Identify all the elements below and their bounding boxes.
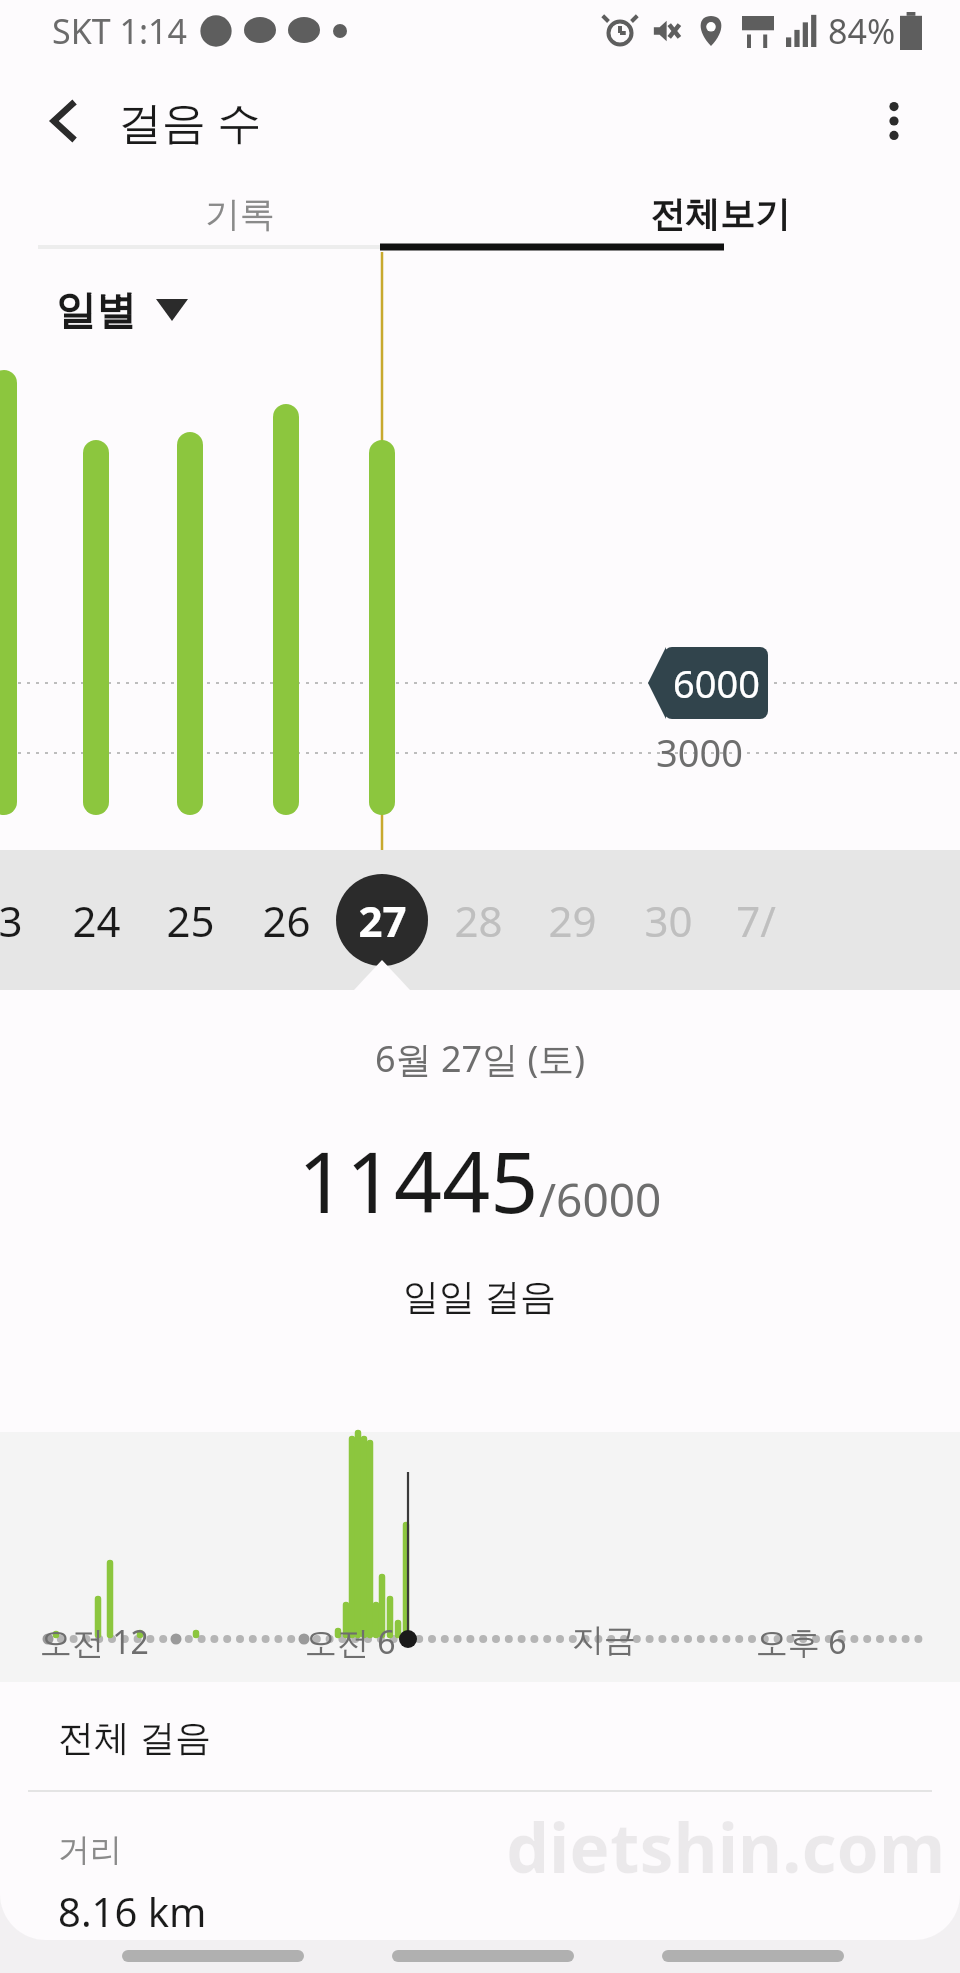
staticText: 6000 — [673, 657, 760, 709]
staticText: 8.16 km — [58, 1884, 207, 1938]
staticText: 27 — [358, 892, 407, 949]
button[interactable]: More options — [856, 83, 932, 159]
staticText: 기록 — [205, 192, 275, 236]
staticText: 오전 6 — [305, 1620, 396, 1664]
button[interactable]: 3 — [0, 874, 56, 966]
staticText: 7/ — [736, 892, 776, 949]
staticText: 11445 — [298, 1123, 539, 1237]
staticText: 29 — [548, 892, 597, 949]
button[interactable]: 29 — [526, 874, 618, 966]
button[interactable]: 전체 걸음 — [0, 1682, 960, 1790]
staticText: /6000 — [539, 1168, 662, 1231]
staticText: 24 — [72, 892, 121, 949]
staticText: 걸음 수 — [118, 91, 262, 151]
button[interactable]: 27 — [336, 874, 428, 966]
staticText: 28 — [454, 892, 503, 949]
staticText: 일별 — [56, 285, 136, 335]
staticText: 84% — [828, 8, 896, 54]
staticText: 일일 걸음 — [403, 1271, 557, 1320]
staticText: 오후 6 — [756, 1620, 847, 1664]
staticText: 3000 — [656, 726, 743, 778]
staticText: 30 — [644, 892, 693, 949]
staticText: 6월 27일 (토) — [375, 1034, 586, 1083]
button[interactable]: 일별 — [56, 282, 188, 338]
button[interactable]: 26 — [240, 874, 332, 966]
button[interactable]: 28 — [432, 874, 524, 966]
staticText: 25 — [166, 892, 215, 949]
button[interactable]: 25 — [144, 874, 236, 966]
staticText: 오전 12 — [40, 1620, 149, 1664]
button[interactable]: 거리 — [0, 1792, 960, 1940]
staticText: 거리 — [58, 1830, 122, 1870]
button[interactable]: 30 — [622, 874, 714, 966]
staticText: 지금 — [572, 1620, 636, 1660]
staticText: 3 — [0, 892, 23, 949]
staticText: SKT 1:14 — [52, 8, 187, 54]
button[interactable]: 24 — [50, 874, 142, 966]
button[interactable]: Back — [30, 86, 100, 156]
staticText: 전체 걸음 — [58, 1712, 212, 1761]
button[interactable]: 7/ — [710, 874, 802, 966]
staticText: dietshin.com — [506, 1800, 946, 1893]
staticText: 전체보기 — [650, 192, 790, 236]
staticText: 26 — [262, 892, 311, 949]
button[interactable]: 전체보기 — [480, 180, 960, 248]
button[interactable]: 기록 — [0, 180, 480, 248]
